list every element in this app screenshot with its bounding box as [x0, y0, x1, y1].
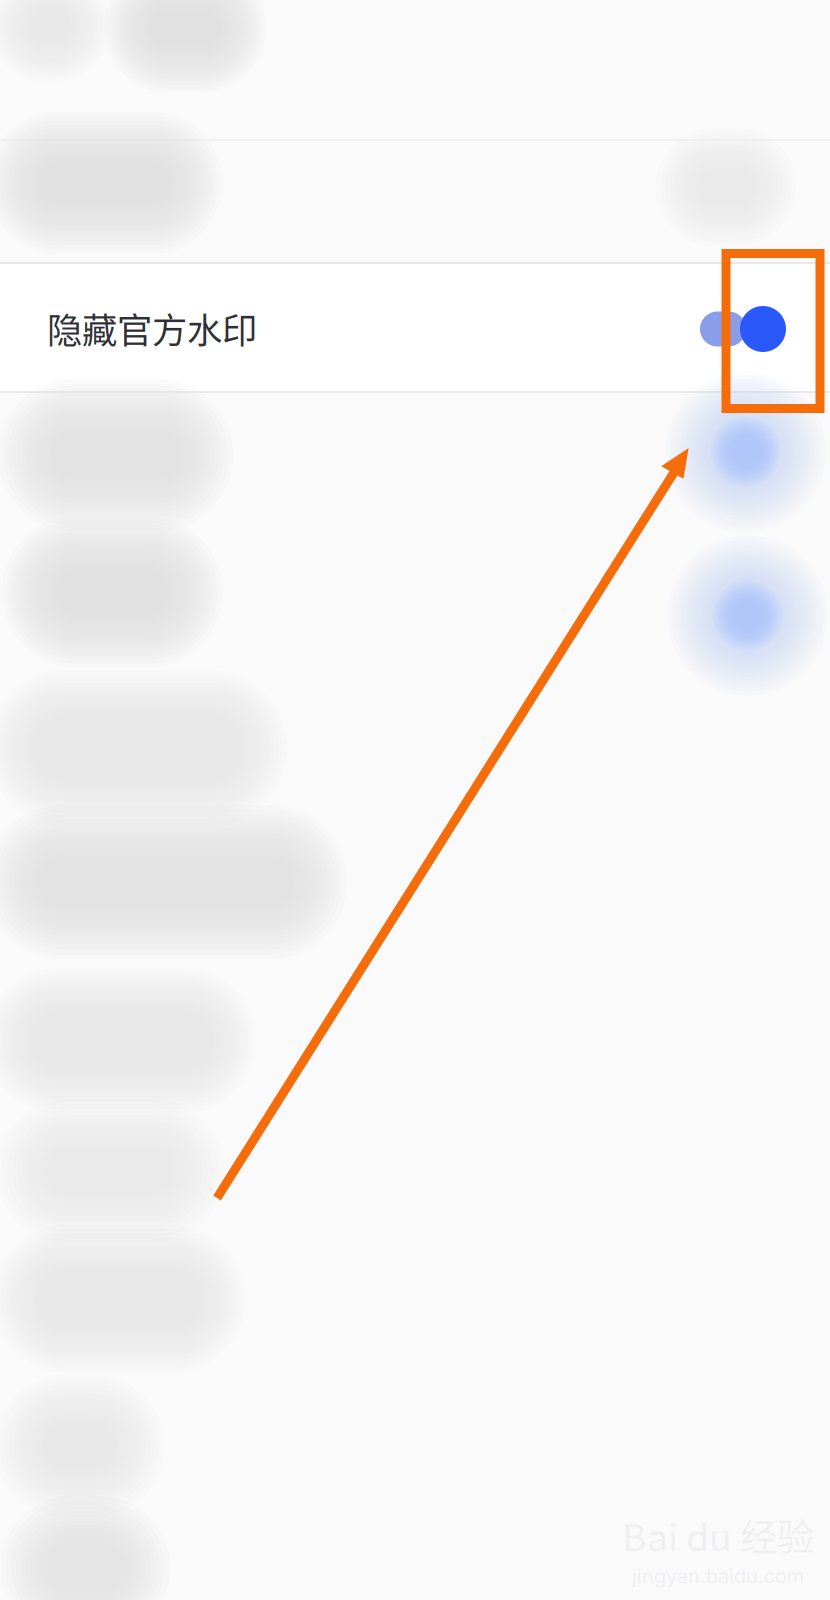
staticText: 隐藏官方水印	[47, 302, 257, 354]
staticText: Bai du 经验	[622, 1508, 814, 1562]
button[interactable]: 隐藏官方水印	[0, 264, 830, 392]
staticText: jingyan.baidu.com	[632, 1564, 804, 1588]
button[interactable]: 隐藏官方水印	[667, 284, 787, 374]
